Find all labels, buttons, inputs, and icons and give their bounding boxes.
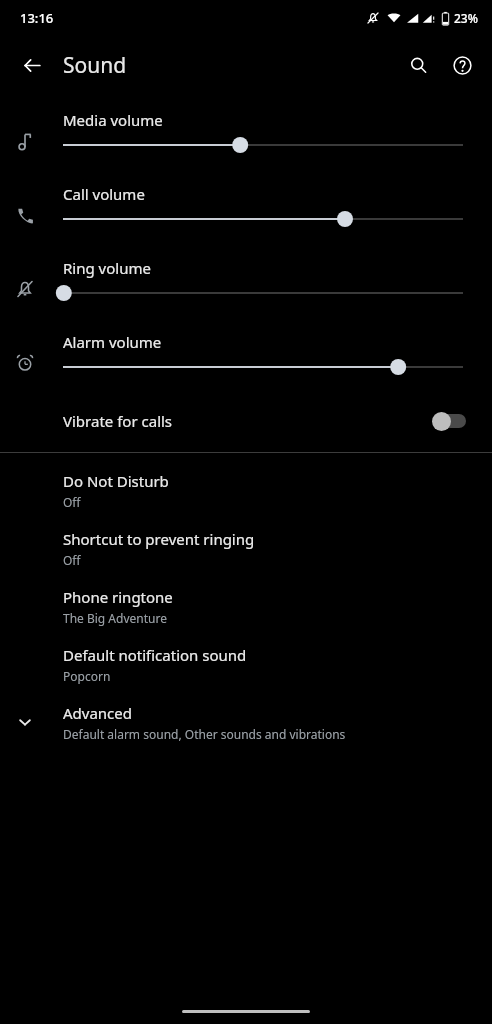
- button[interactable]: Back: [8, 41, 56, 89]
- other: Alarm volume: [12, 350, 38, 376]
- other: Call volume: [12, 202, 38, 228]
- staticText: Ring volume: [63, 258, 151, 278]
- button[interactable]: Default notification sound: [0, 635, 492, 693]
- staticText: Default notification sound: [63, 645, 247, 665]
- button[interactable]: Search: [396, 43, 440, 87]
- staticText: Vibrate for calls: [63, 411, 173, 431]
- other: Ring volume: [12, 276, 38, 302]
- staticText: 23%: [454, 10, 478, 26]
- button[interactable]: Shortcut to prevent ringing: [0, 519, 492, 577]
- staticText: Off: [63, 494, 81, 510]
- staticText: Off: [63, 552, 81, 568]
- staticText: Popcorn: [63, 668, 111, 684]
- button[interactable]: Expand advanced: [0, 693, 492, 751]
- staticText: Shortcut to prevent ringing: [63, 529, 255, 549]
- other: Expand advanced: [12, 709, 38, 735]
- other: Media volume: [12, 128, 38, 154]
- button[interactable]: Help: [440, 43, 484, 87]
- staticText: Media volume: [63, 110, 163, 130]
- staticText: Sound: [63, 51, 127, 80]
- staticText: The Big Adventure: [63, 610, 167, 626]
- staticText: Call volume: [63, 184, 145, 204]
- button[interactable]: Ring volume: [0, 250, 492, 324]
- staticText: Do Not Disturb: [63, 471, 169, 491]
- staticText: Default alarm sound, Other sounds and vi…: [63, 726, 346, 742]
- button[interactable]: Alarm volume: [0, 324, 492, 398]
- button[interactable]: Phone ringtone: [0, 577, 492, 635]
- button[interactable]: Call volume: [0, 176, 492, 250]
- staticText: Alarm volume: [63, 332, 162, 352]
- staticText: 13:16: [20, 9, 54, 27]
- button[interactable]: Media volume: [0, 102, 492, 176]
- button[interactable]: Vibrate for calls: [0, 398, 492, 444]
- staticText: Phone ringtone: [63, 587, 173, 607]
- staticText: Advanced: [63, 703, 133, 723]
- button[interactable]: Do Not Disturb: [0, 461, 492, 519]
